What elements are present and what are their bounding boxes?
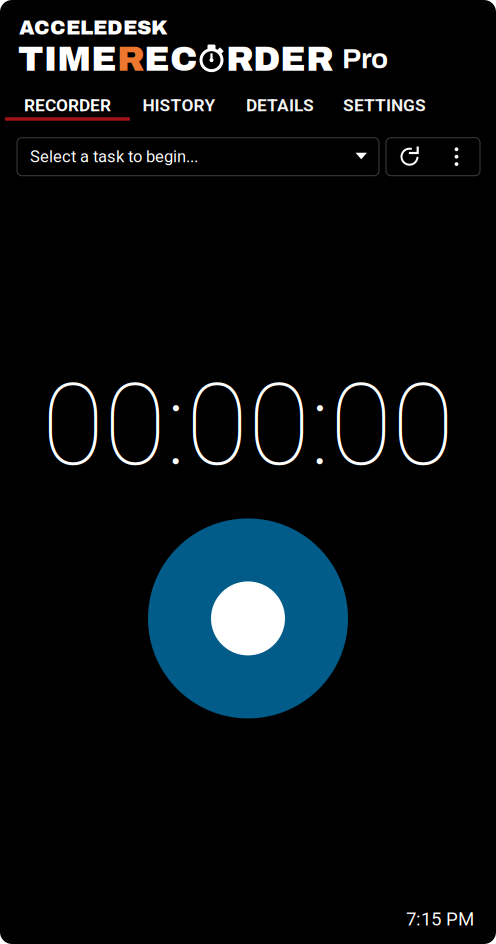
staticText: Select a task to begin... [30, 147, 198, 166]
button[interactable]: More options [433, 139, 480, 175]
staticText: O [197, 40, 226, 78]
button[interactable]: Select a task to begin... [17, 138, 379, 176]
staticText: R [117, 40, 144, 78]
staticText: TIME [18, 40, 117, 78]
staticText: DETAILS [246, 95, 314, 115]
staticText: RECORDER [24, 95, 111, 115]
staticText: EC [144, 40, 197, 78]
staticText: SETTINGS [343, 95, 426, 115]
staticText: ACCELEDESK [19, 17, 168, 39]
button[interactable]: RECORDER [5, 93, 130, 121]
button[interactable]: HISTORY [130, 93, 228, 121]
button[interactable]: SETTINGS [332, 93, 437, 121]
staticText: RDER [226, 40, 333, 78]
staticText: HISTORY [142, 95, 215, 115]
staticText: 7:15 PM [406, 908, 474, 930]
button[interactable]: Start recording [148, 518, 348, 718]
staticText: Pro [342, 44, 388, 74]
button[interactable]: DETAILS [228, 93, 332, 121]
staticText: 00:00:00 [42, 359, 454, 492]
button[interactable]: Refresh [386, 139, 433, 175]
